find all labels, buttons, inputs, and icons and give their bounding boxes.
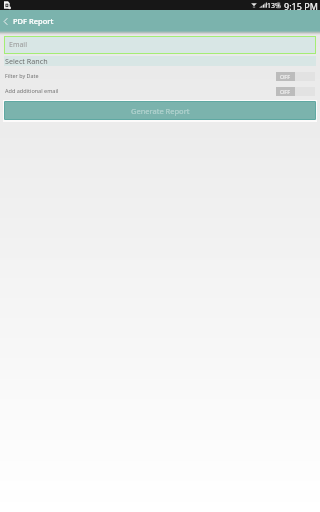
staticText: Email [9, 40, 27, 50]
staticText: Filter by Date [5, 72, 39, 79]
staticText: 13% [267, 1, 281, 11]
staticText: OFF [280, 88, 291, 95]
staticText: Add additional email [5, 87, 59, 94]
button[interactable]: Add additional email [0, 87, 320, 96]
staticText: Generate Report [131, 106, 190, 116]
button[interactable]: Generate Report [5, 102, 315, 119]
button[interactable]: Email [5, 37, 315, 53]
staticText: Select Ranch [5, 56, 48, 66]
staticText: 9:15 PM [284, 0, 318, 10]
button[interactable]: Filter by Date [0, 72, 320, 81]
button[interactable]: Back [0, 10, 11, 32]
staticText: PDF Report [13, 16, 54, 26]
staticText: OFF [280, 73, 291, 80]
button[interactable]: Select Ranch [4, 56, 316, 66]
